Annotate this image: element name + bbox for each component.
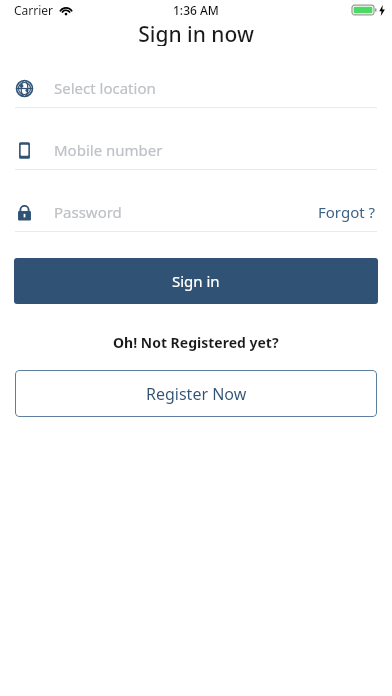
staticText: Password — [54, 202, 122, 222]
button[interactable]: Sign in — [14, 258, 378, 304]
staticText: Select location — [54, 78, 156, 98]
staticText: Oh! Not Registered yet? — [113, 333, 279, 352]
staticText: Register Now — [146, 383, 247, 405]
staticText: Carrier — [14, 2, 54, 18]
button[interactable]: Forgot ? — [314, 200, 380, 224]
staticText: Forgot ? — [318, 202, 376, 222]
button[interactable]: Select location — [0, 74, 392, 102]
staticText: Sign in — [172, 271, 220, 291]
button[interactable]: Register Now — [15, 370, 377, 417]
staticText: 1:36 AM — [173, 2, 219, 18]
button[interactable]: Mobile number — [0, 136, 392, 164]
button[interactable]: Password — [0, 198, 392, 226]
staticText: Mobile number — [54, 140, 163, 160]
staticText: Sign in now — [138, 20, 254, 46]
